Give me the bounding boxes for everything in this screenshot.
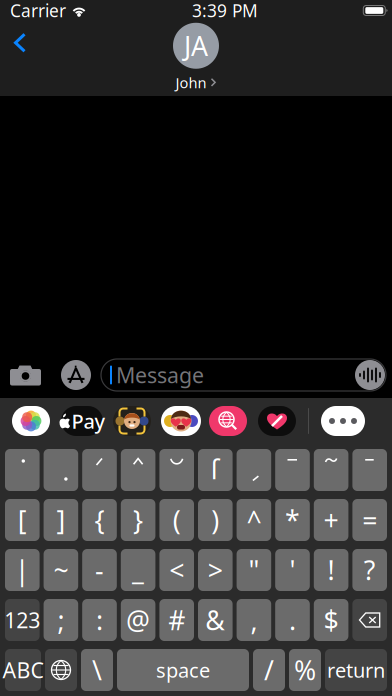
- button[interactable]: 123: [5, 599, 40, 641]
- button[interactable]: !: [314, 549, 348, 591]
- staticText: :: [96, 602, 103, 638]
- button[interactable]: $: [314, 599, 348, 641]
- staticText: ~: [53, 552, 68, 588]
- staticText: Carrier: [10, 0, 66, 22]
- button[interactable]: Apps: [51, 355, 101, 395]
- button[interactable]: acute: [82, 449, 117, 491]
- button[interactable]: Delete: [352, 599, 387, 641]
- staticText: ſ: [211, 451, 220, 487]
- button[interactable]: <: [159, 549, 194, 591]
- button[interactable]: +: [314, 499, 348, 541]
- button[interactable]: {: [82, 499, 117, 541]
- button[interactable]: }: [121, 499, 155, 541]
- button[interactable]: macron: [275, 449, 310, 491]
- button[interactable]: ': [275, 549, 310, 591]
- staticText: &: [205, 602, 225, 638]
- button[interactable]: long s: [198, 449, 233, 491]
- button[interactable]: *: [275, 499, 310, 541]
- staticText: return: [327, 657, 385, 683]
- staticText: $: [324, 602, 339, 638]
- button[interactable]: tilde: [314, 449, 348, 491]
- staticText: =: [362, 502, 377, 538]
- button[interactable]: breve: [159, 449, 194, 491]
- button[interactable]: Back: [0, 19, 42, 67]
- button[interactable]: ,: [237, 599, 271, 641]
- staticText: }: [133, 502, 143, 538]
- button[interactable]: [: [5, 499, 40, 541]
- staticText: ABC: [2, 656, 43, 684]
- staticText: |: [15, 552, 30, 588]
- button[interactable]: JA: [173, 19, 219, 98]
- button[interactable]: Apple Pay: [61, 406, 103, 436]
- staticText: -: [95, 552, 104, 588]
- staticText: ): [211, 502, 219, 538]
- staticText: ^: [246, 502, 261, 538]
- staticText: Pay: [71, 408, 105, 434]
- staticText: *: [285, 502, 300, 538]
- staticText: %: [294, 652, 316, 688]
- staticText: {: [94, 502, 104, 538]
- button[interactable]: &: [198, 599, 233, 641]
- button[interactable]: ?: [352, 549, 387, 591]
- button[interactable]: Digital Touch: [258, 406, 296, 436]
- staticText: 3:39 PM: [192, 0, 258, 22]
- button[interactable]: (: [159, 499, 194, 541]
- staticText: JA: [184, 28, 208, 63]
- button[interactable]: -: [82, 549, 117, 591]
- staticText: ]: [56, 502, 65, 538]
- button[interactable]: dot above: [5, 449, 40, 491]
- button[interactable]: /: [253, 649, 285, 691]
- button[interactable]: comma below: [237, 449, 271, 491]
- staticText: >: [208, 552, 223, 588]
- button[interactable]: dot below: [44, 449, 78, 491]
- button[interactable]: :: [82, 599, 117, 641]
- button[interactable]: @: [121, 599, 155, 641]
- staticText: ?: [364, 552, 376, 588]
- staticText: ;: [57, 602, 64, 638]
- staticText: .: [289, 602, 296, 638]
- staticText: \: [92, 652, 102, 688]
- button[interactable]: ;: [44, 599, 78, 641]
- button[interactable]: Image search: [209, 406, 247, 436]
- button[interactable]: stroke: [352, 449, 387, 491]
- button[interactable]: ABC: [5, 649, 41, 691]
- button[interactable]: \: [81, 649, 113, 691]
- staticText: +: [324, 502, 339, 538]
- button[interactable]: ^: [237, 499, 271, 541]
- button[interactable]: Camera: [0, 355, 51, 395]
- button[interactable]: More apps: [321, 406, 365, 436]
- staticText: space: [156, 657, 210, 683]
- button[interactable]: .: [275, 599, 310, 641]
- staticText: John: [175, 73, 206, 92]
- staticText: ': [289, 552, 295, 588]
- button[interactable]: circumflex: [121, 449, 155, 491]
- staticText: <: [169, 552, 184, 588]
- button[interactable]: |: [5, 549, 40, 591]
- button[interactable]: _: [121, 549, 155, 591]
- button[interactable]: ": [237, 549, 271, 591]
- button[interactable]: space: [117, 649, 249, 691]
- button[interactable]: Next keyboard: [45, 649, 77, 691]
- staticText: [: [18, 502, 27, 538]
- button[interactable]: =: [352, 499, 387, 541]
- staticText: /: [264, 652, 274, 688]
- staticText: ": [248, 552, 259, 588]
- button[interactable]: return: [325, 649, 387, 691]
- button[interactable]: ]: [44, 499, 78, 541]
- staticText: ,: [250, 602, 257, 638]
- button[interactable]: >: [198, 549, 233, 591]
- staticText: 123: [4, 606, 40, 634]
- staticText: (: [173, 502, 181, 538]
- staticText: Message: [116, 361, 204, 389]
- button[interactable]: Memoji: [113, 406, 151, 436]
- staticText: !: [328, 552, 335, 588]
- staticText: @: [126, 602, 150, 638]
- button[interactable]: Stickers: [161, 406, 201, 436]
- staticText: _: [132, 552, 144, 588]
- button[interactable]: Photos: [12, 406, 50, 436]
- button[interactable]: ~: [44, 549, 78, 591]
- button[interactable]: ): [198, 499, 233, 541]
- button[interactable]: %: [289, 649, 321, 691]
- staticText: #: [168, 602, 185, 638]
- button[interactable]: #: [159, 599, 194, 641]
